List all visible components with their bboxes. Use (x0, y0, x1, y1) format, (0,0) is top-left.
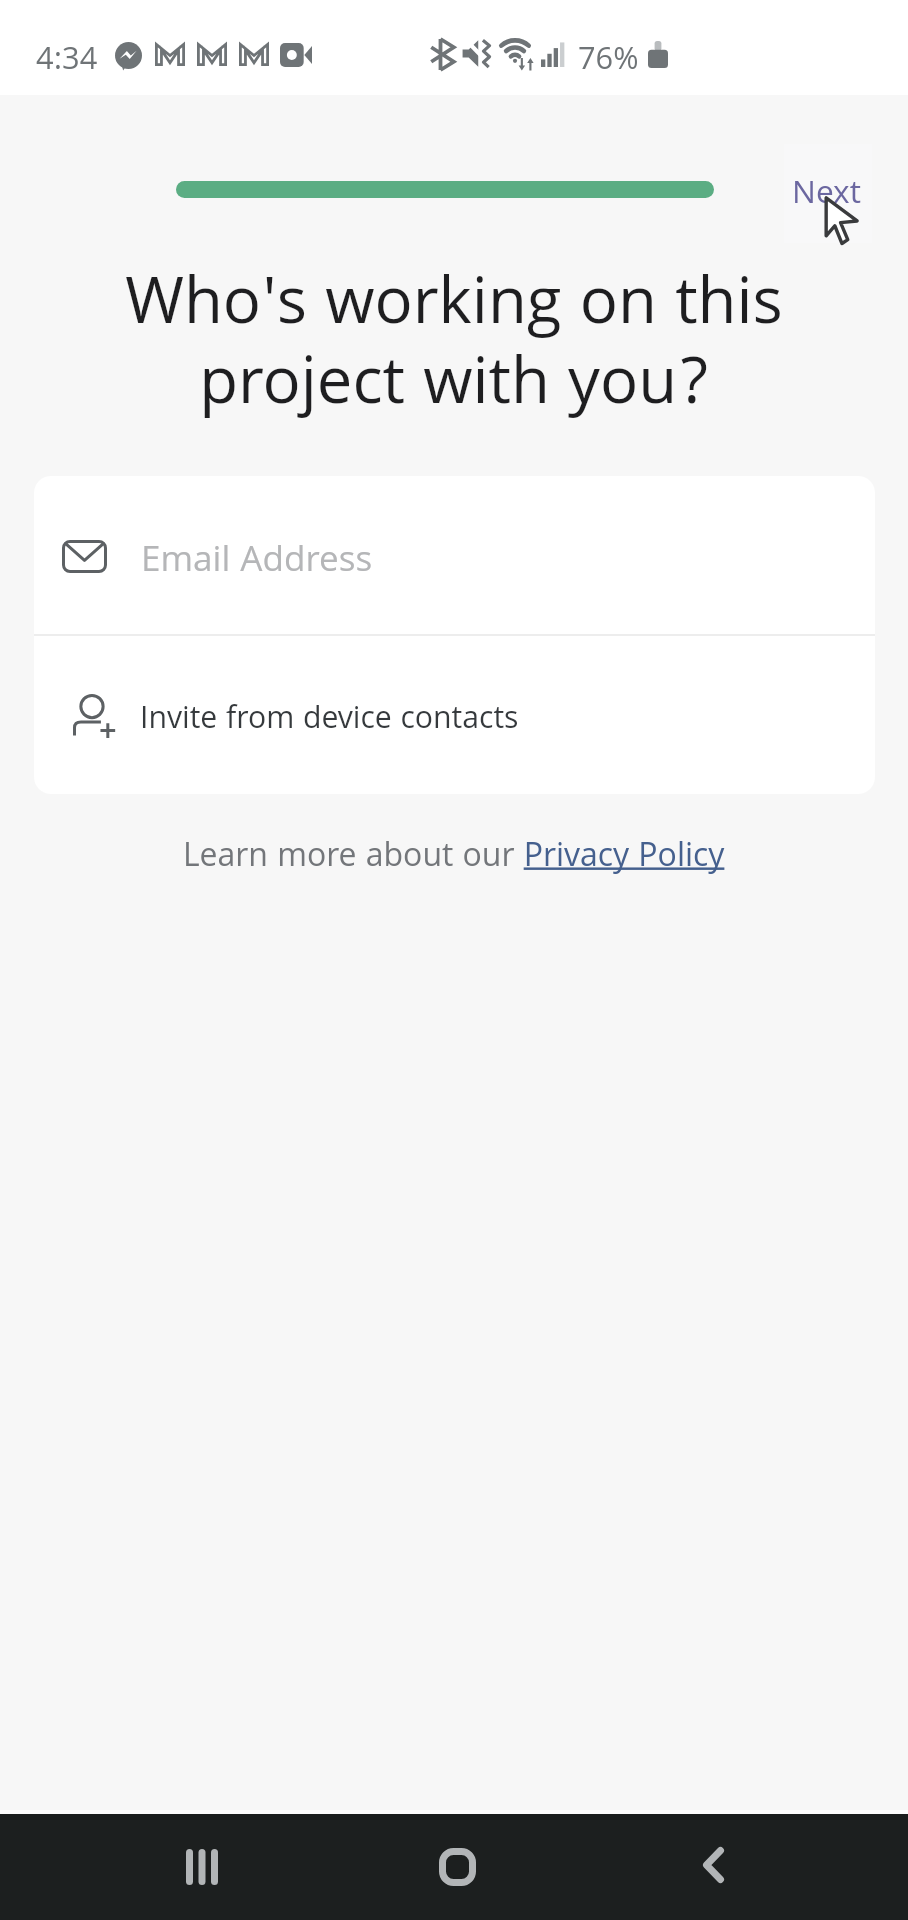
button[interactable]: Home (406, 1814, 508, 1920)
staticText: Next (792, 169, 861, 224)
button[interactable]: Next (784, 144, 872, 243)
staticText: Email Address (141, 533, 373, 593)
button[interactable]: Recent apps (151, 1814, 253, 1920)
button[interactable]: Email Address (34, 476, 875, 634)
button[interactable]: Back (660, 1814, 762, 1920)
button[interactable]: Learn more about our Privacy Policy (183, 832, 725, 887)
staticText: 76% (578, 36, 639, 89)
staticText: Invite from device contacts (140, 696, 519, 748)
staticText: 4:34 (36, 36, 98, 89)
staticText: Who's working on this project with you? (100, 255, 808, 444)
button[interactable]: Invite from device contacts (34, 636, 875, 794)
